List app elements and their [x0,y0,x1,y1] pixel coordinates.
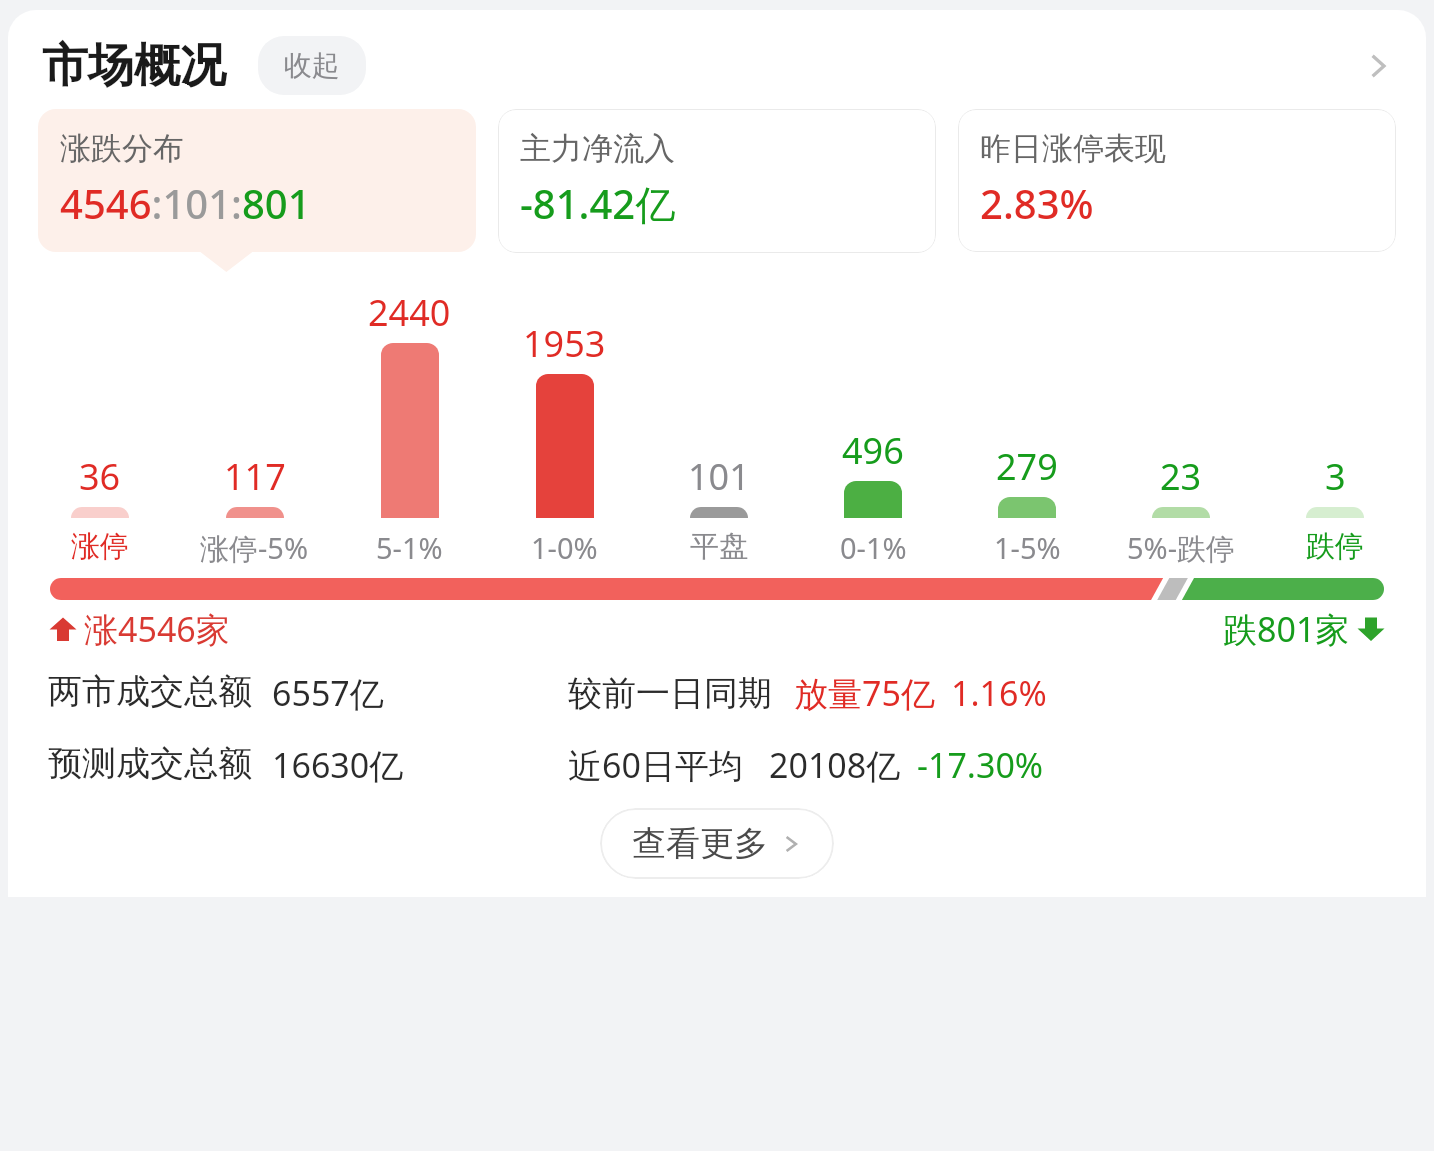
staticText: 1.16% [951,670,1047,716]
staticText: 2.83% [980,176,1094,230]
button[interactable]: 涨跌分布 [38,109,476,252]
staticText: 收起 [284,48,340,83]
staticText: 3 [1325,452,1346,501]
staticText: 5-1% [376,528,443,567]
staticText: 涨跌分布 [60,129,184,168]
staticText: 查看更多 [632,822,768,865]
staticText: 昨日涨停表现 [980,129,1166,168]
staticText: 涨停-5% [200,528,309,568]
staticText: -17.30% [917,742,1044,788]
staticText: 预测成交总额 [48,742,252,785]
staticText: 较前一日同期 [568,672,772,715]
staticText: 36 [79,452,121,501]
staticText: 1-0% [531,528,598,567]
staticText: 279 [996,442,1058,491]
staticText: 6557亿 [272,670,384,716]
staticText: 涨停 [71,528,129,565]
staticText: 23 [1160,452,1202,501]
button[interactable]: 昨日涨停表现 [958,109,1396,252]
staticText: 0-1% [840,528,907,567]
staticText: 101 [688,452,750,501]
staticText: 近60日平均 [568,742,743,788]
staticText: 4546:101:801 [60,176,311,230]
staticText: 主力净流入 [520,129,675,168]
staticText: -81.42亿 [520,176,676,231]
staticText: 5%-跌停 [1127,528,1236,568]
staticText: 平盘 [690,528,748,565]
staticText: 1953 [523,319,606,368]
staticText: 放量75亿 [794,670,935,716]
button[interactable]: 展开详情 [1354,42,1402,90]
staticText: 16630亿 [272,742,404,788]
button[interactable]: 查看更多 [600,808,834,879]
staticText: 两市成交总额 [48,670,252,713]
staticText: 496 [842,426,904,475]
staticText: 跌停 [1306,528,1364,565]
staticText: 跌801家 [1223,606,1350,652]
button[interactable]: 收起 [258,36,366,95]
staticText: 市场概况 [42,37,226,95]
staticText: 1-5% [994,528,1061,567]
staticText: 2440 [368,288,451,337]
staticText: 20108亿 [769,742,901,788]
staticText: 涨4546家 [84,606,230,652]
staticText: 117 [224,452,286,501]
button[interactable]: 主力净流入 [498,109,936,253]
